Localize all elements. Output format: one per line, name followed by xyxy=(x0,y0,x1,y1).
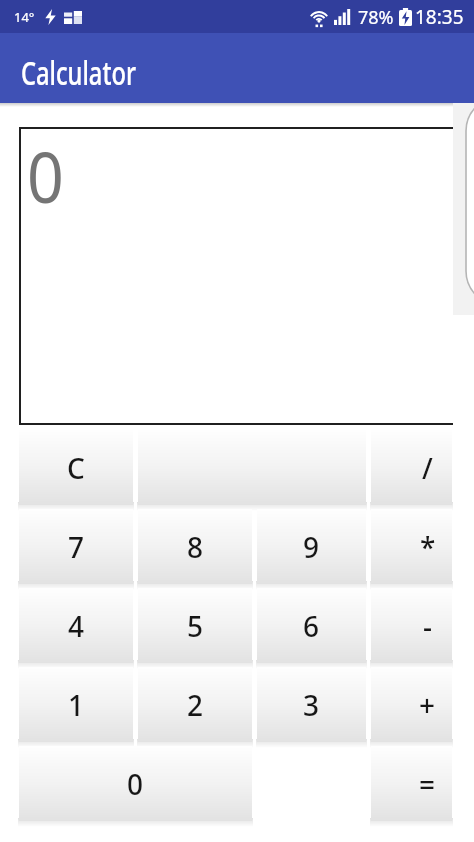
button[interactable]: * xyxy=(371,509,452,584)
staticText: 2 xyxy=(187,686,204,724)
button[interactable]: C xyxy=(19,430,133,505)
staticText: = xyxy=(419,765,436,803)
staticText: - xyxy=(423,607,432,645)
staticText: 1 xyxy=(68,686,85,724)
button[interactable]: 9 xyxy=(257,509,366,584)
staticText: 9 xyxy=(303,528,320,566)
staticText: 3 xyxy=(303,686,320,724)
button[interactable]: + xyxy=(371,667,452,742)
staticText: 0 xyxy=(127,765,144,803)
button[interactable]: 5 xyxy=(138,588,252,663)
staticText: + xyxy=(419,686,436,724)
staticText: Calculator xyxy=(21,51,136,95)
button[interactable] xyxy=(138,430,366,505)
button[interactable]: 0 xyxy=(19,746,252,821)
button[interactable]: 4 xyxy=(19,588,133,663)
button[interactable]: 2 xyxy=(138,667,252,742)
staticText: 6 xyxy=(303,607,320,645)
button[interactable]: 6 xyxy=(257,588,366,663)
staticText: / xyxy=(422,449,433,487)
button[interactable]: 7 xyxy=(19,509,133,584)
staticText: 0 xyxy=(27,128,65,223)
staticText: 18:35 xyxy=(415,4,464,30)
staticText: 7 xyxy=(68,528,85,566)
staticText: 4 xyxy=(68,607,85,645)
staticText: * xyxy=(420,528,436,566)
button[interactable]: 8 xyxy=(138,509,252,584)
staticText: C xyxy=(67,449,85,487)
button[interactable]: - xyxy=(371,588,452,663)
staticText: 8 xyxy=(187,528,204,566)
staticText: 78% xyxy=(358,5,394,30)
staticText: 14° xyxy=(14,8,35,26)
button[interactable]: = xyxy=(371,746,452,821)
button[interactable]: 1 xyxy=(19,667,133,742)
staticText: 5 xyxy=(187,607,204,645)
button[interactable]: 3 xyxy=(257,667,366,742)
button[interactable]: / xyxy=(371,430,452,505)
